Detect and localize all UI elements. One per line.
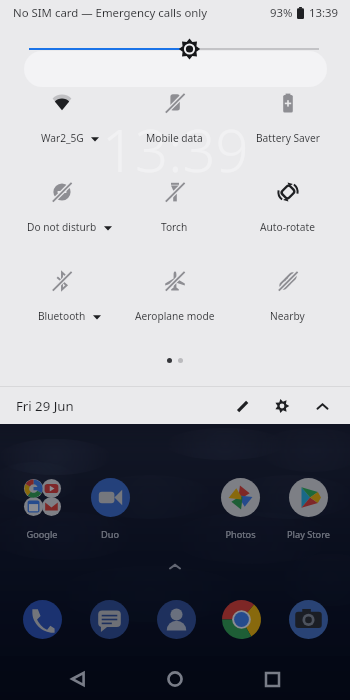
staticText: Auto-rotate <box>260 220 315 234</box>
staticText: No SIM card — Emergency calls only <box>13 5 208 21</box>
button[interactable]: Duo <box>77 477 143 541</box>
button[interactable]: Recents <box>252 659 292 699</box>
button[interactable]: Settings <box>266 390 298 422</box>
button[interactable]: Phone <box>20 597 64 641</box>
staticText: Battery Saver <box>256 131 320 145</box>
button[interactable]: Nearby <box>231 266 344 355</box>
staticText: Aeroplane mode <box>135 309 215 323</box>
staticText: 13:39 <box>102 110 249 189</box>
staticText: War2_5G <box>41 131 84 145</box>
button[interactable]: Home <box>155 659 195 699</box>
button[interactable]: Photos <box>207 477 273 541</box>
button[interactable]: Edit <box>226 390 258 422</box>
staticText: Photos <box>225 528 256 541</box>
button[interactable]: Battery Saver <box>231 88 344 177</box>
staticText: Google <box>26 528 58 541</box>
button[interactable]: Auto-rotate <box>231 177 344 266</box>
button[interactable]: Do not disturb <box>6 177 118 266</box>
staticText: Duo <box>101 528 119 541</box>
button[interactable]: Play Store <box>275 477 341 541</box>
staticText: Torch <box>161 220 188 234</box>
button[interactable]: Messages <box>87 597 131 641</box>
button[interactable]: Mobile data <box>118 88 231 177</box>
staticText: Play Store <box>287 528 330 541</box>
button[interactable]: App drawer <box>163 555 187 579</box>
staticText: 93% <box>270 5 293 21</box>
button[interactable]: Bluetooth <box>6 266 118 355</box>
button[interactable]: Aeroplane mode <box>118 266 231 355</box>
staticText: 13:39 <box>309 5 339 21</box>
staticText: Do not disturb <box>27 220 97 234</box>
button[interactable]: Brightness <box>0 0 350 80</box>
staticText: Nearby <box>270 309 305 323</box>
button[interactable]: Collapse <box>306 390 338 422</box>
staticText: Fri 29 Jun <box>16 397 74 415</box>
button[interactable]: Back <box>58 659 98 699</box>
button[interactable]: Contacts <box>154 597 198 641</box>
button[interactable]: Torch <box>118 177 231 266</box>
button[interactable]: War2_5G <box>6 88 118 177</box>
button[interactable]: Google <box>9 477 75 541</box>
staticText: Bluetooth <box>38 309 86 323</box>
button[interactable]: Camera <box>286 597 330 641</box>
button[interactable] <box>24 51 327 87</box>
staticText: Mobile data <box>146 131 203 145</box>
button[interactable]: Chrome <box>219 597 263 641</box>
